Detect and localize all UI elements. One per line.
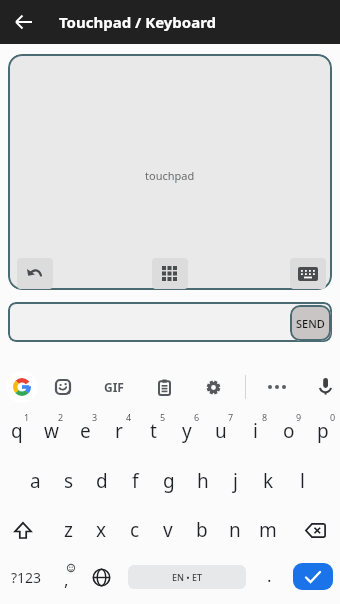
staticText: ?123 — [11, 568, 42, 587]
button[interactable]: s — [52, 458, 85, 504]
staticText: 1 — [24, 411, 30, 423]
staticText: w — [44, 418, 59, 444]
staticText: b — [196, 517, 208, 543]
button[interactable]: SEND — [290, 305, 331, 341]
button[interactable]: EN • ET — [128, 565, 246, 589]
staticText: s — [64, 468, 74, 494]
staticText: f — [132, 468, 139, 494]
button[interactable]: p — [306, 408, 340, 454]
button[interactable]: c — [118, 507, 151, 553]
staticText: i — [253, 418, 258, 444]
button[interactable]: l — [286, 458, 319, 504]
staticText: 0 — [330, 411, 336, 423]
button[interactable] — [290, 258, 326, 289]
button[interactable] — [84, 554, 118, 600]
staticText: k — [263, 468, 274, 494]
button[interactable] — [17, 258, 53, 289]
button[interactable]: , — [52, 554, 84, 600]
staticText: m — [259, 517, 277, 543]
button[interactable] — [262, 372, 292, 402]
button[interactable] — [310, 372, 340, 402]
staticText: EN • ET — [172, 571, 203, 583]
button[interactable]: ?123 — [0, 554, 52, 600]
button[interactable]: z — [52, 507, 85, 553]
staticText: e — [80, 418, 91, 444]
staticText: . — [267, 564, 272, 587]
button[interactable]: o — [272, 408, 306, 454]
staticText: l — [300, 468, 305, 494]
staticText: SEND — [296, 316, 325, 331]
button[interactable]: i — [238, 408, 272, 454]
button[interactable]: v — [151, 507, 184, 553]
button[interactable]: h — [186, 458, 219, 504]
button[interactable]: m — [251, 507, 284, 553]
staticText: g — [163, 468, 175, 494]
button[interactable]: x — [85, 507, 118, 553]
button[interactable] — [293, 563, 333, 590]
button[interactable] — [149, 372, 179, 402]
button[interactable] — [0, 507, 46, 553]
button[interactable] — [152, 258, 188, 289]
staticText: GIF — [104, 379, 124, 395]
staticText: d — [96, 468, 108, 494]
button[interactable]: y — [170, 408, 204, 454]
staticText: z — [64, 517, 73, 543]
staticText: j — [233, 468, 238, 494]
button[interactable]: j — [219, 458, 252, 504]
staticText: h — [197, 468, 209, 494]
button[interactable]: d — [85, 458, 118, 504]
button[interactable]: k — [252, 458, 285, 504]
staticText: u — [215, 418, 227, 444]
button[interactable]: n — [218, 507, 251, 553]
button[interactable] — [198, 372, 228, 402]
staticText: v — [163, 517, 173, 543]
staticText: 8 — [262, 411, 268, 423]
button[interactable]: touchpad — [8, 54, 332, 290]
staticText: 6 — [194, 411, 200, 423]
staticText: 9 — [296, 411, 302, 423]
staticText: 3 — [92, 411, 98, 423]
button[interactable]: GIF — [94, 372, 134, 402]
staticText: t — [150, 418, 157, 444]
staticText: y — [182, 418, 192, 444]
staticText: touchpad — [145, 168, 195, 183]
staticText: r — [115, 418, 123, 444]
button[interactable] — [48, 372, 78, 402]
button[interactable]: w — [34, 408, 68, 454]
staticText: p — [317, 418, 329, 444]
staticText: 4 — [126, 411, 132, 423]
staticText: 5 — [160, 411, 166, 423]
button[interactable]: g — [152, 458, 185, 504]
button[interactable] — [9, 7, 39, 37]
button[interactable]: a — [19, 458, 52, 504]
staticText: n — [229, 517, 241, 543]
button[interactable] — [6, 371, 38, 403]
button[interactable]: u — [204, 408, 238, 454]
staticText: o — [283, 418, 295, 444]
button[interactable]: . — [253, 552, 285, 598]
button[interactable]: e — [68, 408, 102, 454]
staticText: 7 — [228, 411, 234, 423]
staticText: x — [96, 517, 107, 543]
button[interactable]: b — [185, 507, 218, 553]
staticText: 2 — [58, 411, 64, 423]
staticText: c — [130, 517, 140, 543]
button[interactable]: r — [102, 408, 136, 454]
staticText: a — [30, 468, 41, 494]
button[interactable] — [8, 302, 332, 342]
button[interactable] — [292, 507, 338, 553]
button[interactable]: t — [136, 408, 170, 454]
staticText: Touchpad / Keyboard — [59, 12, 217, 32]
staticText: , — [64, 568, 69, 591]
staticText: q — [11, 418, 23, 444]
button[interactable]: q — [0, 408, 34, 454]
button[interactable]: f — [119, 458, 152, 504]
